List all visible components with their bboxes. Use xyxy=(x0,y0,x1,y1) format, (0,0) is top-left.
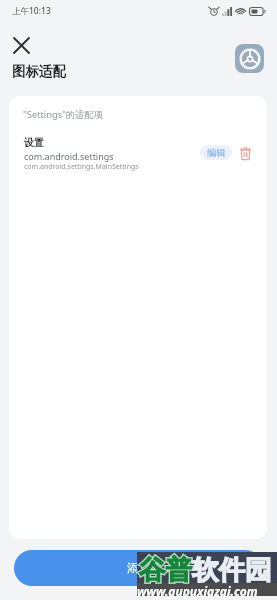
button[interactable]: Settings app icon xyxy=(235,44,264,73)
staticText: 添加 xyxy=(127,561,150,575)
staticText: com.android.settings xyxy=(24,150,114,162)
staticText: 软件园 xyxy=(192,553,272,586)
button[interactable]: Close xyxy=(8,32,34,58)
staticText: 谷普 xyxy=(139,553,192,586)
staticText: 编辑 xyxy=(207,147,226,159)
staticText: 谷普 xyxy=(139,553,192,586)
staticText: "Settings"的适配项 xyxy=(23,108,104,121)
button[interactable]: 添加 xyxy=(14,550,263,586)
staticText: 图标适配 xyxy=(12,63,66,80)
button[interactable]: Delete xyxy=(235,143,255,163)
staticText: com.android.settings.MainSettings xyxy=(24,162,139,172)
staticText: 设置 xyxy=(24,136,44,149)
staticText: 上午10:13 xyxy=(12,5,51,17)
button[interactable]: 编辑 xyxy=(200,145,232,160)
staticText: www.gupuxiazai.com xyxy=(137,583,258,599)
